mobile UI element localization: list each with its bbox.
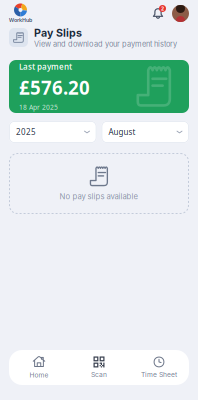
staticText: 18 Apr 2025 [19,103,58,112]
staticText: View and download your payment history [34,39,177,48]
staticText: Home [29,371,48,379]
button[interactable]: Scan [69,350,129,385]
staticText: £576.20 [19,75,90,100]
staticText: 2025 [16,127,36,137]
button[interactable]: 2025 [9,121,96,143]
staticText: 2 [161,5,164,12]
staticText: Time Sheet [141,370,177,379]
staticText: August [108,127,135,137]
button[interactable]: Profile [167,5,189,22]
button[interactable]: Time Sheet [129,350,189,385]
staticText: Scan [91,370,107,379]
button[interactable]: Home [9,350,69,385]
button[interactable]: Notifications [149,4,167,22]
staticText: Pay Slips [34,26,82,39]
staticText: Last payment [19,61,72,72]
staticText: WorkHub [9,16,32,24]
button[interactable]: August [101,121,189,143]
staticText: No pay slips available [59,192,138,201]
